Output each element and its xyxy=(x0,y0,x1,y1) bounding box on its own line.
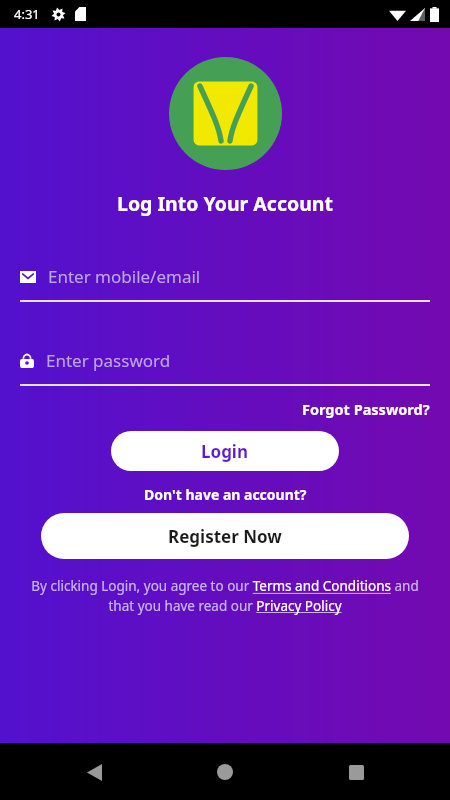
button[interactable]: Home xyxy=(203,750,247,794)
button[interactable]: Forgot Password? xyxy=(0,399,430,419)
staticText: Login xyxy=(201,440,249,463)
staticText: Enter password xyxy=(46,349,171,372)
button[interactable]: Recent apps xyxy=(334,750,378,794)
staticText: 4:31 xyxy=(14,5,40,23)
button[interactable]: Login xyxy=(111,431,339,471)
button[interactable]: By clicking Login, you agree to our Term… xyxy=(18,577,432,615)
staticText: Enter mobile/email xyxy=(48,265,201,288)
staticText: Register Now xyxy=(168,525,282,548)
button[interactable]: Back xyxy=(72,750,116,794)
staticText: Log Into Your Account xyxy=(117,190,333,217)
button[interactable]: Register Now xyxy=(41,513,409,559)
staticText: Forgot Password? xyxy=(302,399,430,419)
staticText: Don't have an account? xyxy=(144,485,307,504)
staticText: By clicking Login, you agree to our Term… xyxy=(18,577,432,615)
